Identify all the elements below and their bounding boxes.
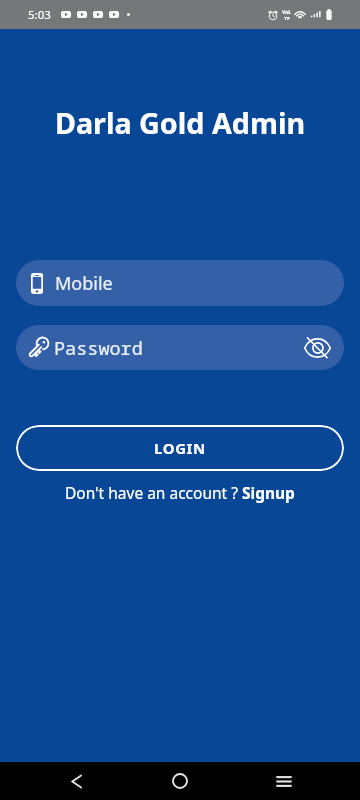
staticText: TE: [284, 16, 290, 20]
button[interactable]: LOGIN: [16, 425, 344, 471]
button[interactable]: Show password: [302, 334, 332, 362]
button[interactable]: Home: [163, 762, 197, 800]
staticText: Don't have an account ?: [65, 482, 242, 503]
staticText: VoL: [282, 9, 292, 16]
staticText: LOGIN: [154, 438, 206, 458]
button[interactable]: Password: [16, 325, 344, 370]
button[interactable]: Recents: [267, 762, 301, 800]
button[interactable]: Mobile: [16, 260, 344, 306]
button[interactable]: Signup: [242, 482, 295, 503]
staticText: Signup: [242, 482, 295, 503]
staticText: Mobile: [55, 271, 113, 296]
staticText: Password: [54, 335, 143, 360]
staticText: 5:03: [28, 7, 51, 23]
button[interactable]: Back: [59, 762, 93, 800]
staticText: Darla Gold Admin: [0, 103, 360, 142]
